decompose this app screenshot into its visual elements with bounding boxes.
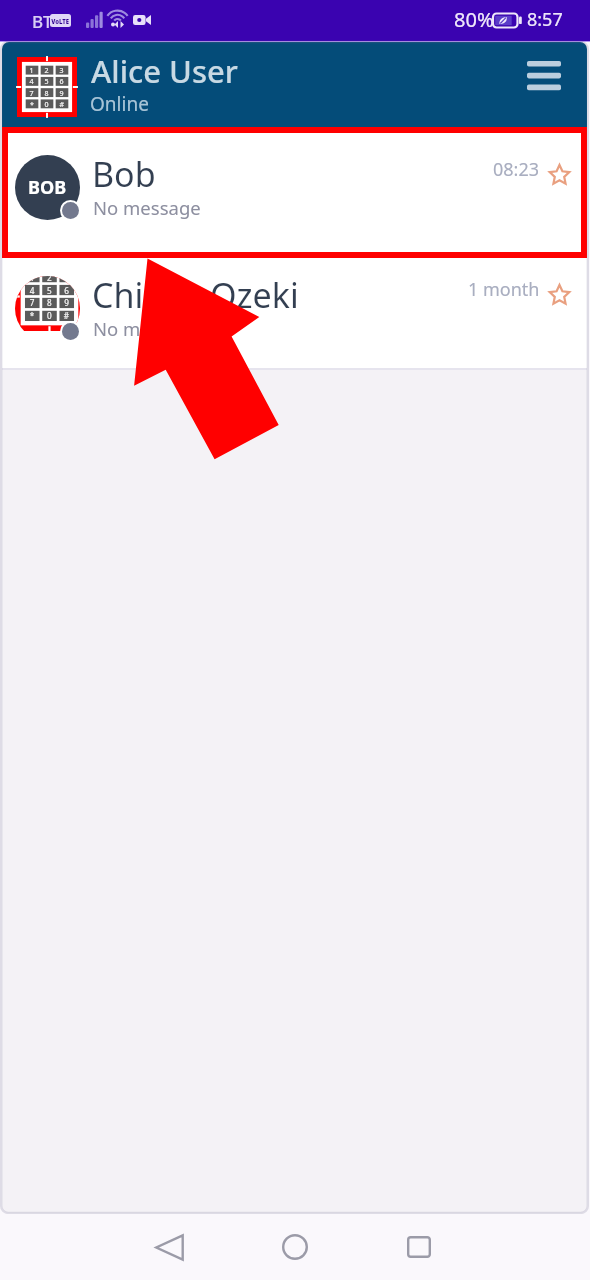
staticText: 8:57 [527,7,563,32]
staticText: No message [93,316,201,341]
button[interactable]: Home [267,1219,323,1275]
staticText: Online [90,91,149,117]
button[interactable]: Menu [517,48,571,102]
staticText: Chieko Ozeki [92,272,299,318]
staticText: 08:23 [493,157,540,182]
staticText: 1 month [468,277,540,302]
staticText: BT [32,10,53,33]
staticText: Alice User [91,50,238,92]
button[interactable] [17,57,77,117]
button[interactable]: Back [141,1219,197,1275]
button[interactable]: Recents [391,1219,447,1275]
button[interactable]: Chieko Ozeki [2,258,587,368]
button[interactable]: Favourite [546,161,572,187]
staticText: No message [93,195,201,220]
button[interactable]: BOB [2,127,587,258]
staticText: BOB [28,175,67,200]
staticText: 80% [454,6,494,33]
staticText: Bob [92,151,156,197]
button[interactable]: Favourite [546,281,572,307]
